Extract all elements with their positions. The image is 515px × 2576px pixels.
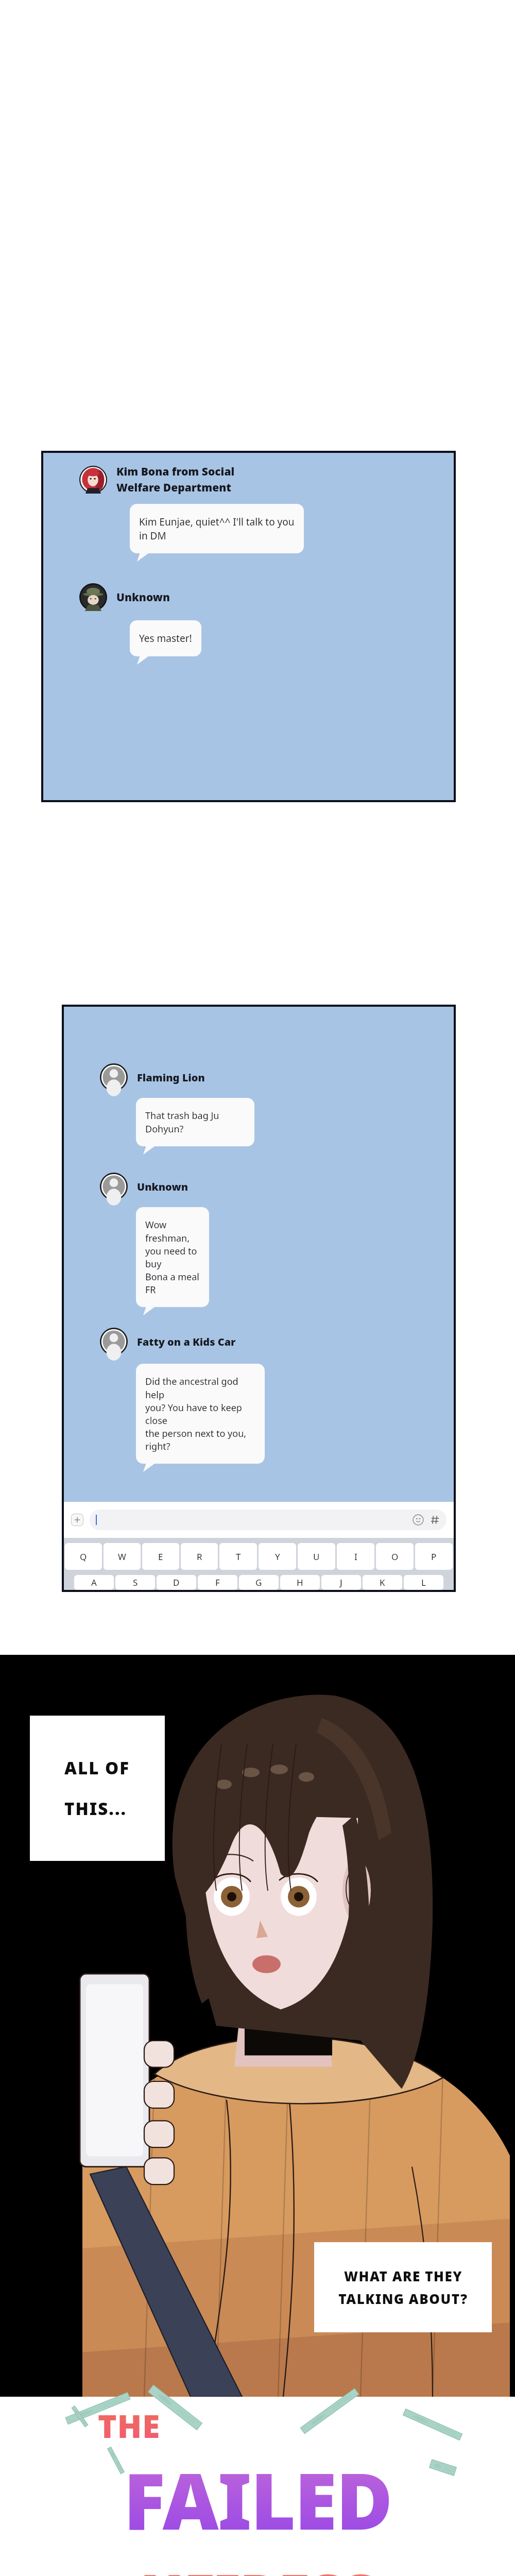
staticText: H [297, 1577, 303, 1588]
staticText: THIS... [64, 1797, 127, 1820]
button[interactable]: R [181, 1543, 218, 1570]
button[interactable]: That trash bag Ju Dohyun? [136, 1098, 254, 1146]
button[interactable]: D [157, 1575, 196, 1590]
button[interactable]: Fatty on a Kids Car [100, 1328, 443, 1355]
staticText: Wow freshman, you need to buy Bona a mea… [145, 1218, 200, 1296]
staticText: A [91, 1577, 97, 1588]
staticText: Y [275, 1551, 280, 1563]
staticText: O [391, 1551, 399, 1563]
staticText: J [340, 1577, 342, 1588]
staticText: Kim Eunjae, quiet^^ I'll talk to you in … [139, 515, 295, 542]
button[interactable]: Yes master! [130, 620, 201, 656]
staticText: W [118, 1551, 126, 1563]
button[interactable]: O [376, 1543, 414, 1570]
button[interactable]: ALL OF [30, 1716, 165, 1861]
staticText: G [255, 1577, 262, 1588]
staticText: S [133, 1577, 138, 1588]
button[interactable]: W [104, 1543, 141, 1570]
button[interactable]: Emoji [90, 1510, 447, 1530]
staticText: K [380, 1577, 385, 1588]
button[interactable]: A [74, 1575, 114, 1590]
staticText: Yes master! [139, 632, 192, 645]
staticText: P [431, 1551, 437, 1563]
staticText: Kim Bona from Social Welfare Department [116, 464, 235, 495]
button[interactable]: Y [259, 1543, 296, 1570]
staticText: That trash bag Ju Dohyun? [145, 1109, 245, 1135]
button[interactable]: T [219, 1543, 257, 1570]
staticText: WHAT ARE THEY TALKING ABOUT? [338, 2267, 468, 2308]
button[interactable]: Wow freshman, you need to buy Bona a mea… [136, 1207, 209, 1307]
button[interactable]: Flaming Lion [100, 1063, 443, 1091]
button[interactable]: I [337, 1543, 374, 1570]
button[interactable]: Q [65, 1543, 102, 1570]
other: Hashtag [430, 1515, 440, 1525]
staticText: THE [98, 2404, 161, 2447]
button[interactable]: U [298, 1543, 335, 1570]
staticText: E [158, 1551, 163, 1563]
staticText: FAILED [124, 2447, 392, 2552]
staticText: T [236, 1551, 241, 1563]
button[interactable]: G [239, 1575, 279, 1590]
other: Emoji [413, 1514, 424, 1526]
button[interactable]: Kim Bona from Social Welfare Department [79, 464, 443, 495]
staticText: Unknown [137, 1180, 188, 1194]
staticText: Did the ancestral god help you? You have… [145, 1375, 255, 1452]
staticText: I [354, 1551, 357, 1563]
button[interactable]: WHAT ARE THEY TALKING ABOUT? [314, 2242, 492, 2332]
staticText: U [313, 1551, 320, 1563]
staticText: Q [80, 1551, 87, 1563]
staticText: L [421, 1577, 426, 1588]
staticText: Fatty on a Kids Car [137, 1335, 236, 1349]
button[interactable]: Unknown [100, 1173, 443, 1200]
staticText: D [173, 1577, 180, 1588]
button[interactable]: E [142, 1543, 179, 1570]
button[interactable]: H [280, 1575, 320, 1590]
button[interactable]: S [115, 1575, 155, 1590]
staticText: Flaming Lion [137, 1071, 205, 1084]
button[interactable]: F [198, 1575, 237, 1590]
button[interactable]: K [363, 1575, 402, 1590]
button[interactable]: Add attachment [71, 1514, 83, 1526]
button[interactable]: J [321, 1575, 361, 1590]
button[interactable]: Did the ancestral god help you? You have… [136, 1364, 265, 1464]
staticText: ALL OF [64, 1756, 130, 1780]
button[interactable]: Kim Eunjae, quiet^^ I'll talk to you in … [130, 504, 304, 553]
button[interactable]: Unknown [79, 583, 443, 611]
staticText: Unknown [116, 590, 170, 605]
staticText: R [197, 1551, 202, 1563]
staticText: HEIRESS [140, 2554, 375, 2576]
button[interactable]: P [415, 1543, 453, 1570]
staticText: F [215, 1577, 220, 1588]
button[interactable]: L [404, 1575, 443, 1590]
